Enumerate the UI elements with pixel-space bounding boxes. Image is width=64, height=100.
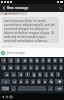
button[interactable]: f <box>25 72 30 77</box>
staticText: y <box>36 66 38 70</box>
button[interactable]: Backspace <box>55 79 63 84</box>
staticText: 3 <box>17 59 19 63</box>
staticText: l <box>58 73 59 77</box>
staticText: s <box>13 73 15 77</box>
button[interactable]: r <box>22 65 27 70</box>
button[interactable]: . <box>48 86 53 91</box>
staticText: a <box>6 73 8 77</box>
staticText: i <box>49 66 50 70</box>
staticText: b <box>38 80 40 84</box>
button[interactable]: 1 <box>1 58 6 63</box>
button[interactable]: g <box>32 72 36 77</box>
button[interactable]: j <box>44 72 48 77</box>
staticText: 5 <box>30 59 32 63</box>
staticText: x <box>20 80 22 84</box>
button[interactable]: q <box>1 65 6 70</box>
staticText: Text message <box>7 51 25 55</box>
staticText: u <box>42 66 44 70</box>
button[interactable]: y <box>35 65 39 70</box>
button[interactable]: v <box>31 79 35 84</box>
staticText: ?123 <box>2 87 9 91</box>
staticText: t <box>30 66 32 70</box>
staticText: j <box>46 73 47 77</box>
button[interactable]: c <box>25 79 29 84</box>
staticText: 2 <box>10 59 12 63</box>
button[interactable]: n <box>43 79 47 84</box>
button[interactable]: i <box>47 65 51 70</box>
button[interactable]: 4 <box>22 58 27 63</box>
button[interactable]: 3 <box>15 58 20 63</box>
staticText: v <box>32 80 34 84</box>
button[interactable]: z <box>12 79 17 84</box>
button[interactable]: 0 <box>59 58 63 63</box>
staticText: 1 <box>3 59 5 63</box>
button[interactable]: b <box>37 79 41 84</box>
staticText: g <box>33 73 35 77</box>
button[interactable]: u <box>41 65 45 70</box>
button[interactable]: l <box>56 72 60 77</box>
button[interactable]: Call <box>56 4 64 12</box>
button[interactable]: e <box>15 65 20 70</box>
button[interactable]: Home <box>5 95 9 99</box>
staticText: w <box>9 66 12 70</box>
button[interactable]: 6 <box>35 58 39 63</box>
staticText: . <box>50 87 51 91</box>
button[interactable]: Recipient <box>0 12 27 15</box>
staticText: 8 <box>48 59 50 63</box>
button[interactable]: o <box>53 65 57 70</box>
button[interactable]: p <box>59 65 63 70</box>
button[interactable]: 9 <box>53 58 57 63</box>
staticText: c <box>26 80 28 84</box>
button[interactable]: ?123 <box>1 86 9 91</box>
staticText: , <box>13 87 14 91</box>
button[interactable]: Shift <box>1 79 10 84</box>
button[interactable]: m <box>49 79 53 84</box>
staticText: 6 <box>36 59 38 63</box>
staticText: m <box>50 80 53 84</box>
button[interactable]: d <box>18 72 23 77</box>
staticText: q <box>3 66 5 70</box>
button[interactable]: Back <box>1 95 5 99</box>
staticText: 0 <box>60 59 62 63</box>
button[interactable]: s <box>11 72 16 77</box>
staticText: o <box>54 66 56 70</box>
button[interactable]: 7 <box>41 58 45 63</box>
button[interactable]: x <box>19 79 23 84</box>
button[interactable]: Back <box>0 4 7 12</box>
button[interactable]: 2 <box>8 58 13 63</box>
staticText: z <box>14 80 16 84</box>
staticText: f <box>27 73 28 77</box>
staticText: p <box>60 66 62 70</box>
button[interactable]: t <box>29 65 33 70</box>
button[interactable]: 5 <box>29 58 33 63</box>
staticText: h <box>39 73 41 77</box>
staticText: n <box>44 80 46 84</box>
button[interactable]: 8 <box>47 58 51 63</box>
button[interactable]: Lorem ipsum dolor sit amet, consectetur … <box>2 17 59 43</box>
button[interactable]: h <box>38 72 42 77</box>
staticText: r <box>24 66 26 70</box>
button[interactable]: a <box>4 72 9 77</box>
button[interactable]: w <box>8 65 13 70</box>
button[interactable]: Recents <box>9 95 13 99</box>
staticText: d <box>20 73 22 77</box>
staticText: 7 <box>42 59 44 63</box>
staticText: New message <box>7 6 29 10</box>
button[interactable]: k <box>50 72 54 77</box>
staticText: 4 <box>24 59 26 63</box>
staticText: 9 <box>54 59 56 63</box>
staticText: 9:41 AM <box>3 44 13 47</box>
button[interactable]: Add attachment <box>1 51 5 55</box>
staticText: e <box>17 66 19 70</box>
button[interactable]: , <box>11 86 16 91</box>
staticText: Lorem ipsum dolor sit amet, consectetur … <box>4 19 57 43</box>
staticText: k <box>51 73 53 77</box>
button[interactable]: Enter <box>55 86 63 91</box>
